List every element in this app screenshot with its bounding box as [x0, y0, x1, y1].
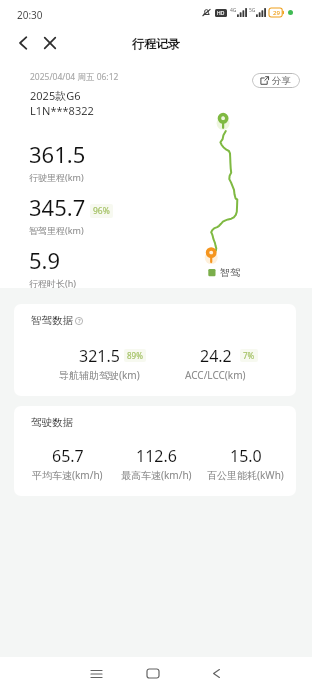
button[interactable]: Back — [199, 656, 233, 690]
staticText: ACC/LCC(km) — [185, 368, 246, 382]
staticText: 2025款G6 — [30, 88, 81, 103]
staticText: 361.5 — [29, 139, 86, 169]
staticText: 112.6 — [136, 445, 177, 467]
staticText: 行驶里程(km) — [29, 171, 84, 183]
staticText: 345.7 — [29, 192, 86, 222]
staticText: 24.2 — [200, 345, 232, 367]
staticText: 4G — [230, 7, 237, 14]
staticText: HD — [217, 10, 225, 17]
staticText: 15.0 — [230, 445, 262, 467]
staticText: 96% — [93, 205, 110, 217]
staticText: 行程记录 — [132, 36, 180, 51]
staticText: 智驾 — [220, 266, 240, 279]
staticText: 7% — [243, 350, 255, 361]
staticText: 20:30 — [17, 8, 43, 22]
staticText: L1N***8322 — [30, 103, 94, 118]
staticText: 89% — [127, 350, 143, 361]
staticText: 百公里能耗(kWh) — [207, 468, 284, 482]
button[interactable]: Close — [37, 30, 63, 56]
staticText: 行程时长(h) — [29, 277, 76, 289]
staticText: ? — [78, 317, 81, 325]
button[interactable]: 分享 — [252, 73, 300, 88]
staticText: 平均车速(km/h) — [32, 468, 103, 482]
staticText: 驾驶数据 — [31, 416, 73, 429]
staticText: 2025/04/04 周五 06:12 — [30, 71, 119, 83]
staticText: 29 — [273, 9, 280, 17]
button[interactable]: Back — [9, 30, 35, 56]
staticText: 5.9 — [29, 245, 61, 275]
staticText: 分享 — [272, 75, 291, 87]
staticText: 智驾数据 — [31, 314, 73, 327]
staticText: 智驾里程(km) — [29, 224, 84, 236]
staticText: 5G — [249, 7, 256, 14]
staticText: 321.5 — [79, 345, 120, 367]
button[interactable]: Home — [136, 656, 170, 690]
staticText: 65.7 — [52, 445, 84, 467]
button[interactable]: Recent apps — [79, 656, 113, 690]
staticText: 导航辅助驾驶(km) — [59, 368, 140, 382]
staticText: 最高车速(km/h) — [121, 468, 192, 482]
